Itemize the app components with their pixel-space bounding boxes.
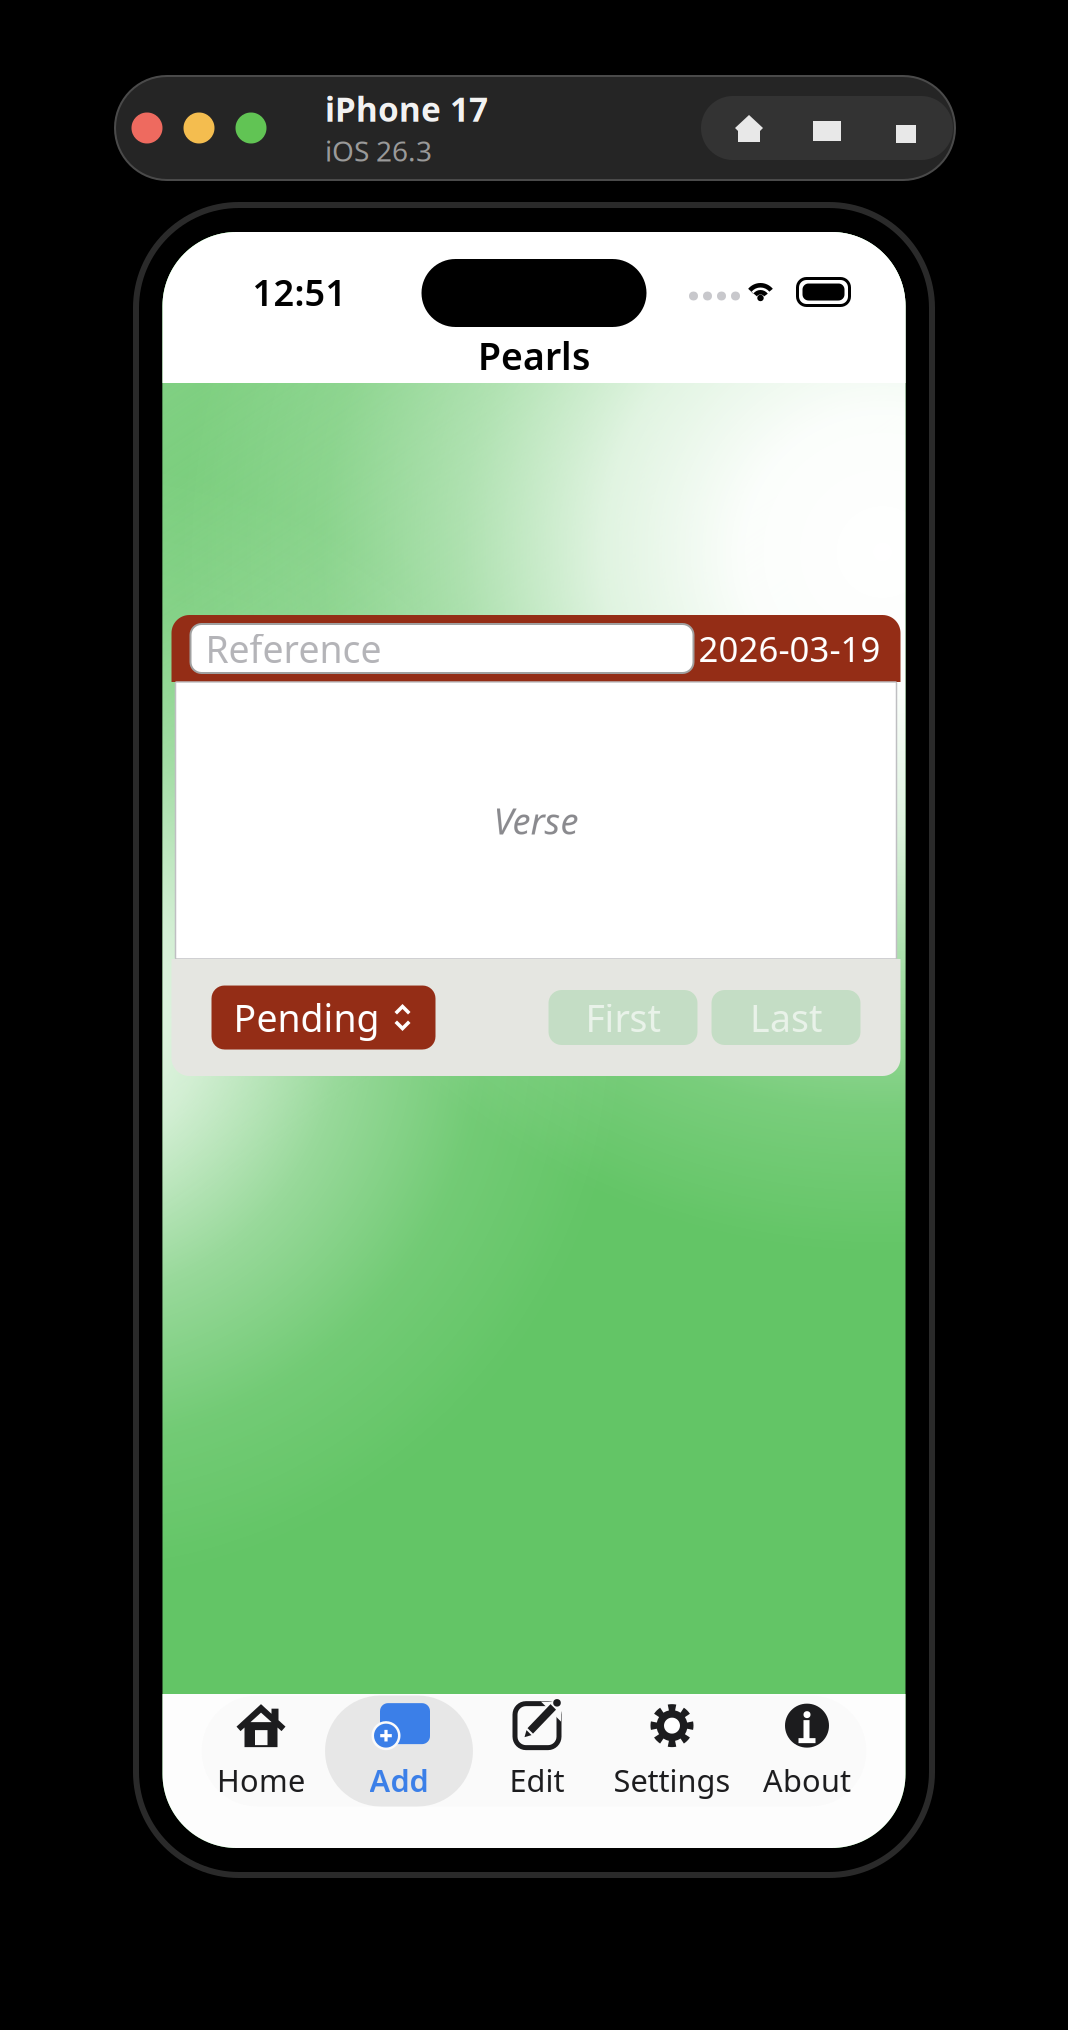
staticText: About <box>763 1760 851 1800</box>
staticText: Home <box>217 1760 305 1800</box>
staticText: Edit <box>509 1760 564 1800</box>
button[interactable]: Home <box>725 104 773 152</box>
staticText: iPhone 17 <box>325 87 488 131</box>
button[interactable]: Rotate <box>881 104 929 152</box>
staticText: Pending <box>233 993 379 1042</box>
staticText: Settings <box>613 1760 730 1800</box>
button[interactable]: Pending <box>211 985 435 1049</box>
staticText: Last <box>750 993 822 1042</box>
button[interactable]: First <box>548 990 697 1045</box>
button[interactable]: Home <box>197 1695 325 1806</box>
button[interactable]: Last <box>711 990 860 1045</box>
staticText: First <box>585 993 660 1042</box>
button[interactable]: Add <box>325 1695 473 1806</box>
button[interactable]: Edit <box>473 1695 601 1806</box>
staticText: iOS 26.3 <box>325 132 432 169</box>
staticText: Pearls <box>478 331 590 380</box>
staticText: 12:51 <box>252 268 346 316</box>
staticText: Verse <box>493 797 578 844</box>
staticText: Add <box>369 1760 428 1800</box>
button[interactable]: About <box>743 1695 871 1806</box>
button[interactable]: Screenshot <box>803 104 851 152</box>
staticText: 2026-03-19 <box>698 625 880 671</box>
button[interactable]: Settings <box>601 1695 743 1806</box>
staticText: Reference <box>205 624 381 673</box>
